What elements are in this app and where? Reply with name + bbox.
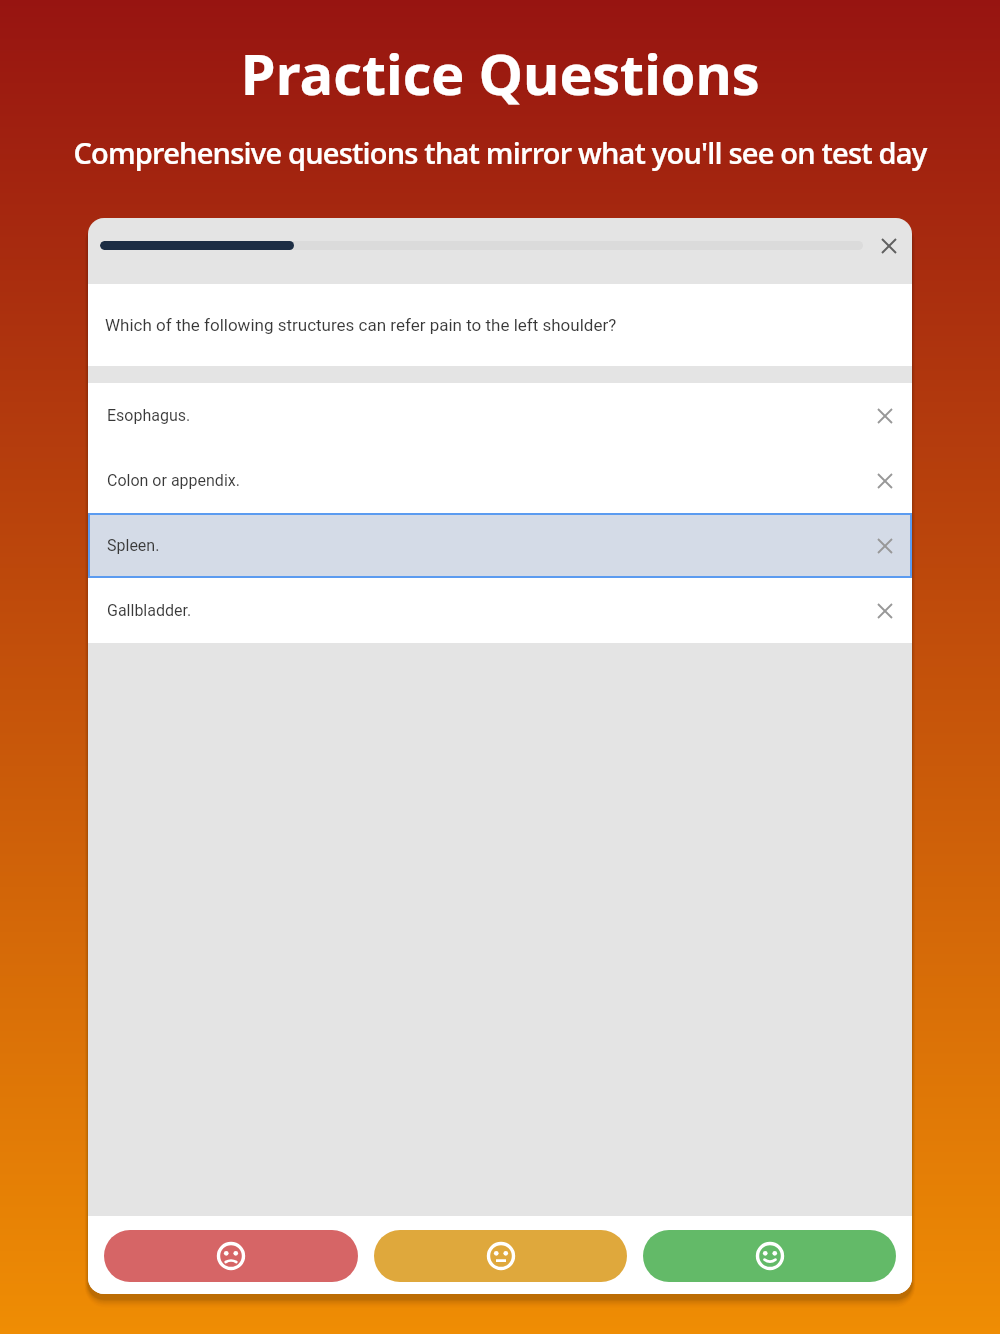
button[interactable]: Eliminate Gallbladder. — [868, 594, 902, 628]
staticText: Gallbladder. — [107, 601, 868, 620]
staticText: Esophagus. — [107, 406, 868, 425]
staticText: Practice Questions — [0, 35, 1000, 111]
button[interactable]: Easy — [643, 1230, 896, 1282]
staticText: Colon or appendix. — [107, 471, 868, 490]
button[interactable]: Colon or appendix. — [88, 448, 912, 513]
button[interactable]: Medium — [374, 1230, 627, 1282]
button[interactable]: Eliminate Spleen. — [868, 529, 902, 563]
button[interactable]: Eliminate Colon or appendix. — [868, 464, 902, 498]
button[interactable]: Eliminate Esophagus. — [868, 399, 902, 433]
staticText: Which of the following structures can re… — [105, 315, 617, 335]
button[interactable]: Gallbladder. — [88, 578, 912, 643]
staticText: Spleen. — [107, 536, 868, 555]
button[interactable]: Close — [866, 223, 912, 269]
staticText: Comprehensive questions that mirror what… — [0, 133, 1000, 172]
button[interactable]: Spleen. — [88, 513, 912, 578]
button[interactable]: Hard — [104, 1230, 358, 1282]
button[interactable]: Esophagus. — [88, 383, 912, 448]
